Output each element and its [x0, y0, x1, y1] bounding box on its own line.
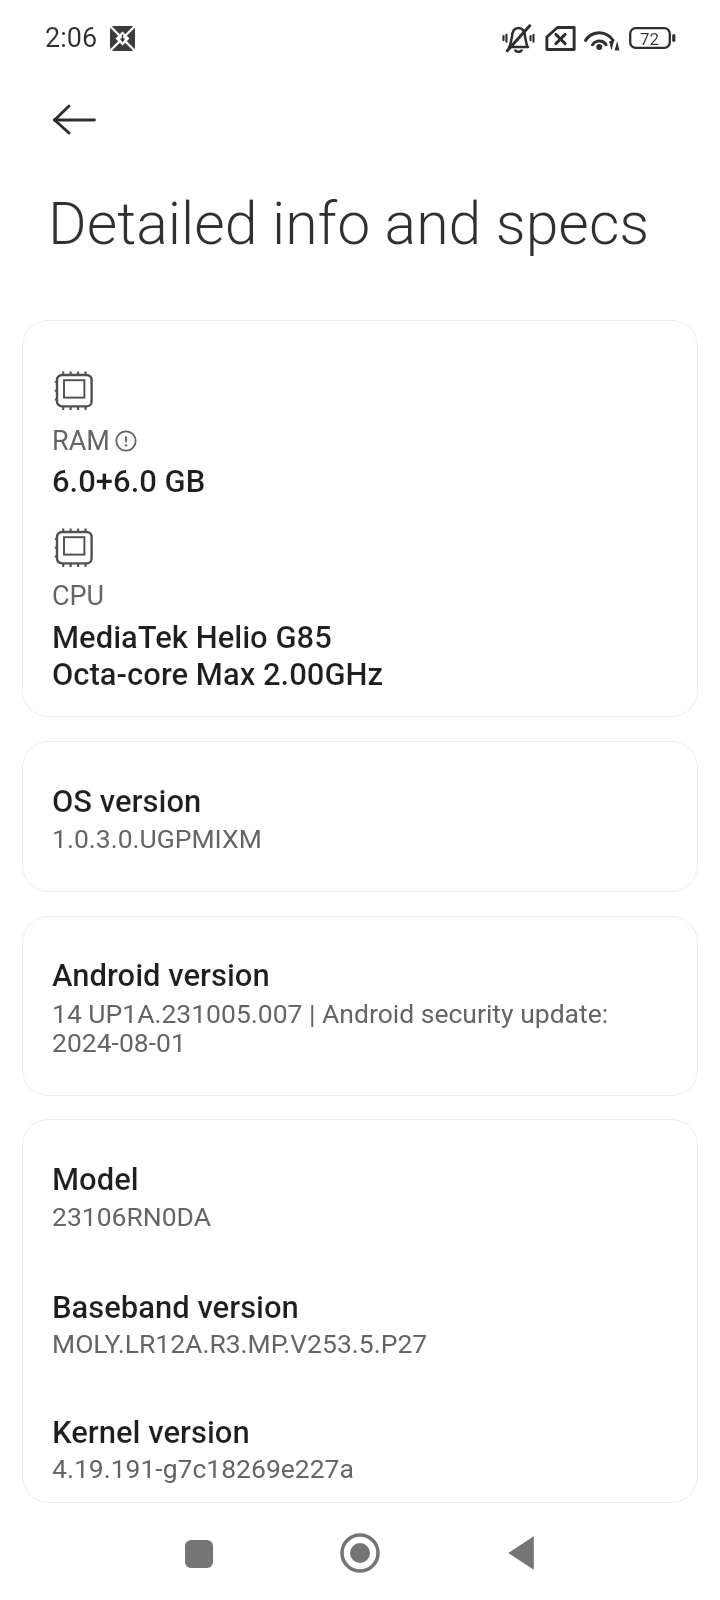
- staticText: 2:06: [45, 22, 98, 54]
- button[interactable]: Back: [30, 90, 90, 150]
- button[interactable]: Home: [300, 1504, 420, 1600]
- staticText: OS version: [52, 783, 202, 820]
- staticText: 14 UP1A.231005.007 | Android security up…: [52, 1000, 609, 1058]
- button[interactable]: OS version: [22, 741, 698, 892]
- staticText: 1.0.3.0.UGPMIXM: [52, 825, 262, 854]
- button[interactable]: Back: [461, 1504, 581, 1600]
- staticText: Model: [52, 1161, 139, 1198]
- staticText: 72: [640, 29, 660, 49]
- staticText: CPU: [52, 580, 105, 612]
- staticText: 6.0+6.0 GB: [52, 463, 206, 500]
- button[interactable]: Recent apps: [139, 1504, 259, 1600]
- button[interactable]: Android version: [22, 916, 698, 1096]
- staticText: Detailed info and specs: [48, 189, 650, 258]
- staticText: Kernel version: [52, 1414, 250, 1451]
- button[interactable]: RAM: [22, 320, 698, 717]
- staticText: MediaTek Helio G85 Octa-core Max 2.00GHz: [52, 619, 384, 693]
- staticText: 23106RN0DA: [52, 1203, 211, 1232]
- staticText: MOLY.LR12A.R3.MP.V253.5.P27: [52, 1330, 428, 1359]
- button[interactable]: Model: [22, 1119, 698, 1503]
- staticText: Android version: [52, 957, 270, 994]
- staticText: Baseband version: [52, 1289, 299, 1326]
- staticText: RAM: [52, 425, 110, 457]
- staticText: 4.19.191-g7c18269e227a: [52, 1455, 354, 1484]
